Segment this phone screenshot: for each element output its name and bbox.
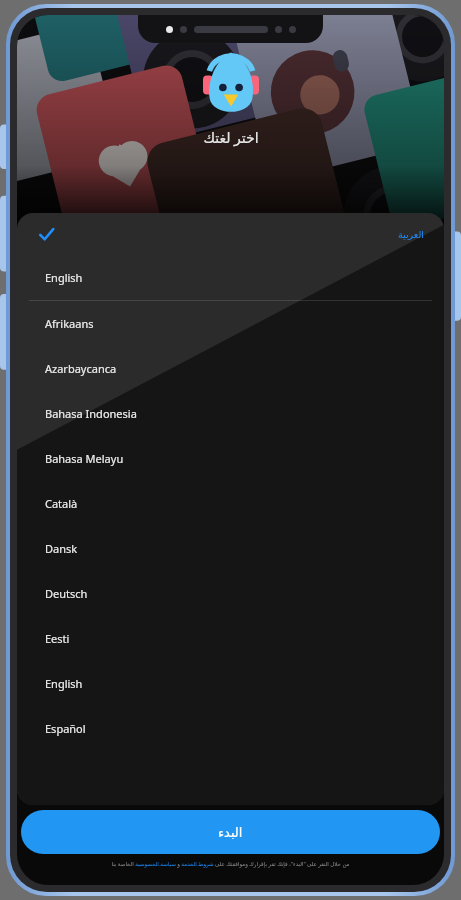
staticText: البدء	[218, 825, 243, 840]
button[interactable]: Selected language	[33, 221, 59, 247]
button[interactable]: Bahasa Melayu	[17, 436, 444, 481]
staticText: Deutsch	[45, 586, 88, 601]
button[interactable]: Azarbaycanca	[17, 346, 444, 391]
button[interactable]: Afrikaans	[17, 301, 444, 346]
staticText: من خلال النقر على "البدء"، فإنك تقر بإقر…	[111, 860, 350, 867]
staticText: Eesti	[45, 631, 70, 646]
staticText: English	[45, 270, 83, 285]
button[interactable]: Bahasa Indonesia	[17, 391, 444, 436]
button[interactable]: Eesti	[17, 616, 444, 661]
button[interactable]: English	[17, 661, 444, 706]
button[interactable]: البدء	[21, 810, 440, 854]
staticText: العربية	[398, 229, 424, 240]
staticText: Bahasa Melayu	[45, 451, 124, 466]
button[interactable]: Català	[17, 481, 444, 526]
staticText: Dansk	[45, 541, 78, 556]
button[interactable]: Dansk	[17, 526, 444, 571]
staticText: English	[45, 676, 83, 691]
staticText: Català	[45, 496, 78, 511]
button[interactable]: Deutsch	[17, 571, 444, 616]
staticText: Afrikaans	[45, 316, 94, 331]
staticText: اختر لغتك	[203, 128, 259, 147]
staticText: Bahasa Indonesia	[45, 406, 137, 421]
staticText: Español	[45, 721, 86, 736]
button[interactable]: English	[17, 255, 444, 300]
button[interactable]: العربية	[394, 225, 428, 244]
staticText: Azarbaycanca	[45, 361, 117, 376]
button[interactable]: Español	[17, 706, 444, 751]
